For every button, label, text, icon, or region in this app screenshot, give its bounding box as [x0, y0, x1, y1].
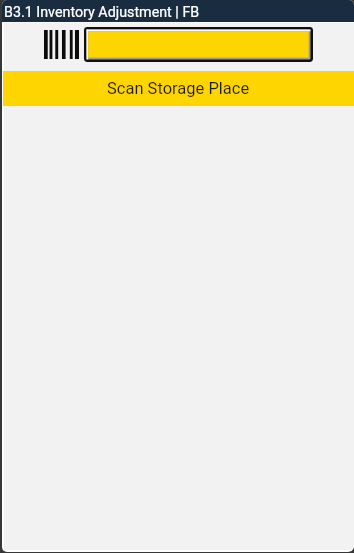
button[interactable]: Barcode input: [84, 27, 313, 62]
staticText: Scan Storage Place: [107, 79, 250, 98]
button[interactable]: Scan barcode: [44, 30, 80, 59]
staticText: B3.1 Inventory Adjustment | FB: [4, 4, 200, 21]
button[interactable]: Scan Storage Place: [3, 71, 354, 106]
